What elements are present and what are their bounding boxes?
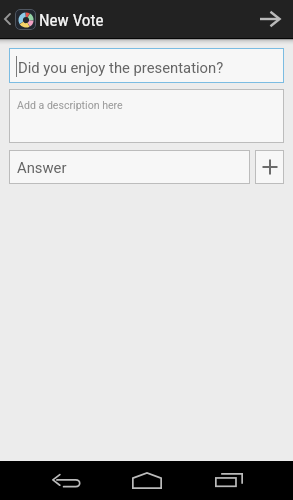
button[interactable]: Answer — [9, 150, 250, 184]
button[interactable]: Did you enjoy the presentation? — [9, 48, 284, 83]
staticText: Add a description here — [17, 99, 123, 111]
button[interactable]: Add a description here — [9, 89, 284, 143]
button[interactable]: Next — [247, 0, 293, 38]
staticText: Did you enjoy the presentation? — [18, 59, 224, 76]
button[interactable]: Recent apps — [199, 461, 259, 500]
button[interactable]: Navigate up — [0, 0, 36, 38]
staticText: New Vote — [39, 10, 104, 30]
button[interactable]: Add answer — [255, 150, 284, 184]
button[interactable]: Home — [117, 461, 177, 500]
staticText: Answer — [17, 159, 67, 176]
button[interactable]: Back — [36, 461, 96, 500]
